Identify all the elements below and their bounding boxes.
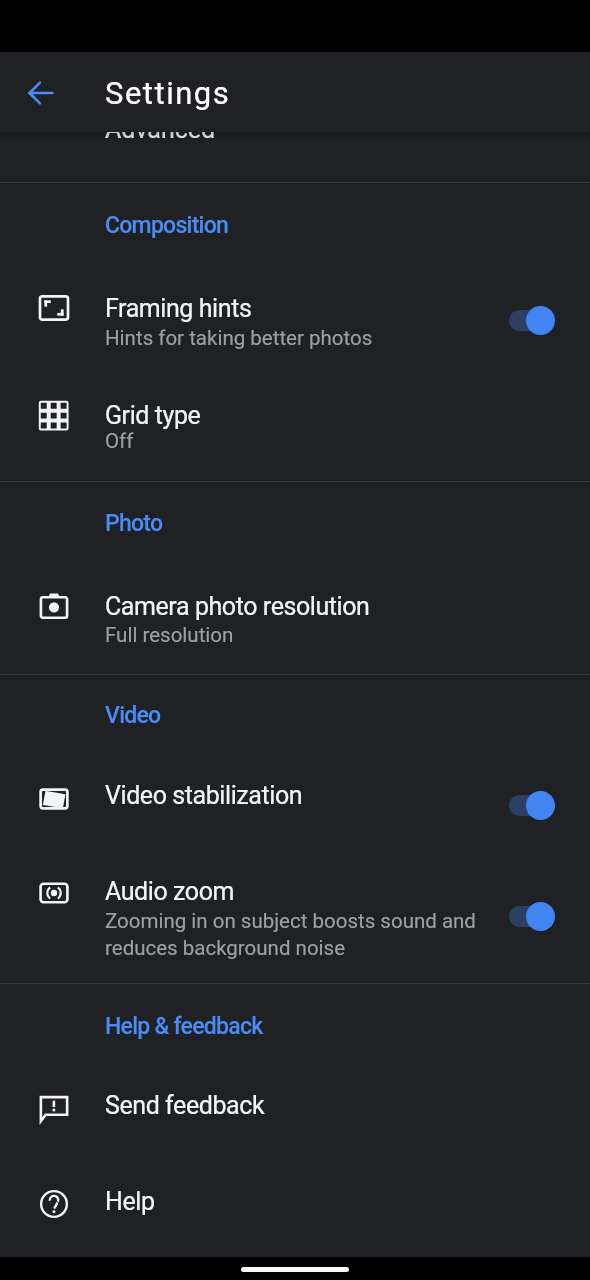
staticText: Framing hints bbox=[105, 292, 252, 323]
button[interactable] bbox=[0, 375, 590, 481]
button[interactable] bbox=[0, 987, 590, 1047]
staticText: Off bbox=[105, 426, 134, 453]
staticText: Help & feedback bbox=[105, 1011, 263, 1040]
button[interactable] bbox=[0, 268, 590, 375]
staticText: Full resolution bbox=[105, 620, 234, 647]
button[interactable]: Toggle Video stabilization bbox=[503, 784, 565, 826]
staticText: Audio zoom bbox=[105, 875, 235, 906]
button[interactable] bbox=[0, 851, 590, 983]
staticText: Video stabilization bbox=[105, 779, 303, 810]
button[interactable] bbox=[0, 566, 590, 674]
staticText: Hints for taking better photos bbox=[105, 323, 373, 350]
button[interactable] bbox=[0, 676, 590, 736]
button[interactable] bbox=[0, 1161, 590, 1257]
button[interactable] bbox=[0, 755, 590, 851]
staticText: Video bbox=[105, 700, 161, 729]
button[interactable] bbox=[0, 484, 590, 544]
staticText: Settings bbox=[105, 73, 231, 112]
button[interactable] bbox=[0, 1065, 590, 1161]
button[interactable] bbox=[0, 185, 590, 245]
staticText: Photo bbox=[105, 508, 163, 537]
button[interactable]: Toggle Framing hints bbox=[503, 299, 565, 341]
button[interactable]: Back bbox=[17, 69, 65, 117]
staticText: Grid type bbox=[105, 399, 201, 430]
staticText: Advanced bbox=[105, 113, 216, 144]
staticText: Camera photo resolution bbox=[105, 590, 370, 621]
staticText: Zooming in on subject boosts sound and r… bbox=[105, 906, 476, 960]
button[interactable]: Toggle Audio zoom bbox=[503, 895, 565, 937]
staticText: Help bbox=[105, 1185, 155, 1216]
staticText: Send feedback bbox=[105, 1089, 265, 1120]
staticText: Composition bbox=[105, 210, 229, 239]
